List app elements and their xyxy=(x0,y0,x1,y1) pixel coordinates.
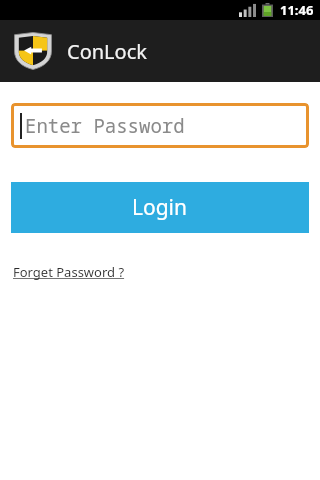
staticText: 11:46 xyxy=(280,1,314,19)
staticText: Forget Password ? xyxy=(13,263,125,281)
button[interactable]: Login xyxy=(11,182,309,233)
staticText: Login xyxy=(132,193,188,222)
button[interactable]: Enter Password xyxy=(11,103,309,148)
staticText: Enter Password xyxy=(25,113,185,139)
button[interactable]: Forget Password ? xyxy=(11,261,127,283)
staticText: ConLock xyxy=(67,38,147,65)
